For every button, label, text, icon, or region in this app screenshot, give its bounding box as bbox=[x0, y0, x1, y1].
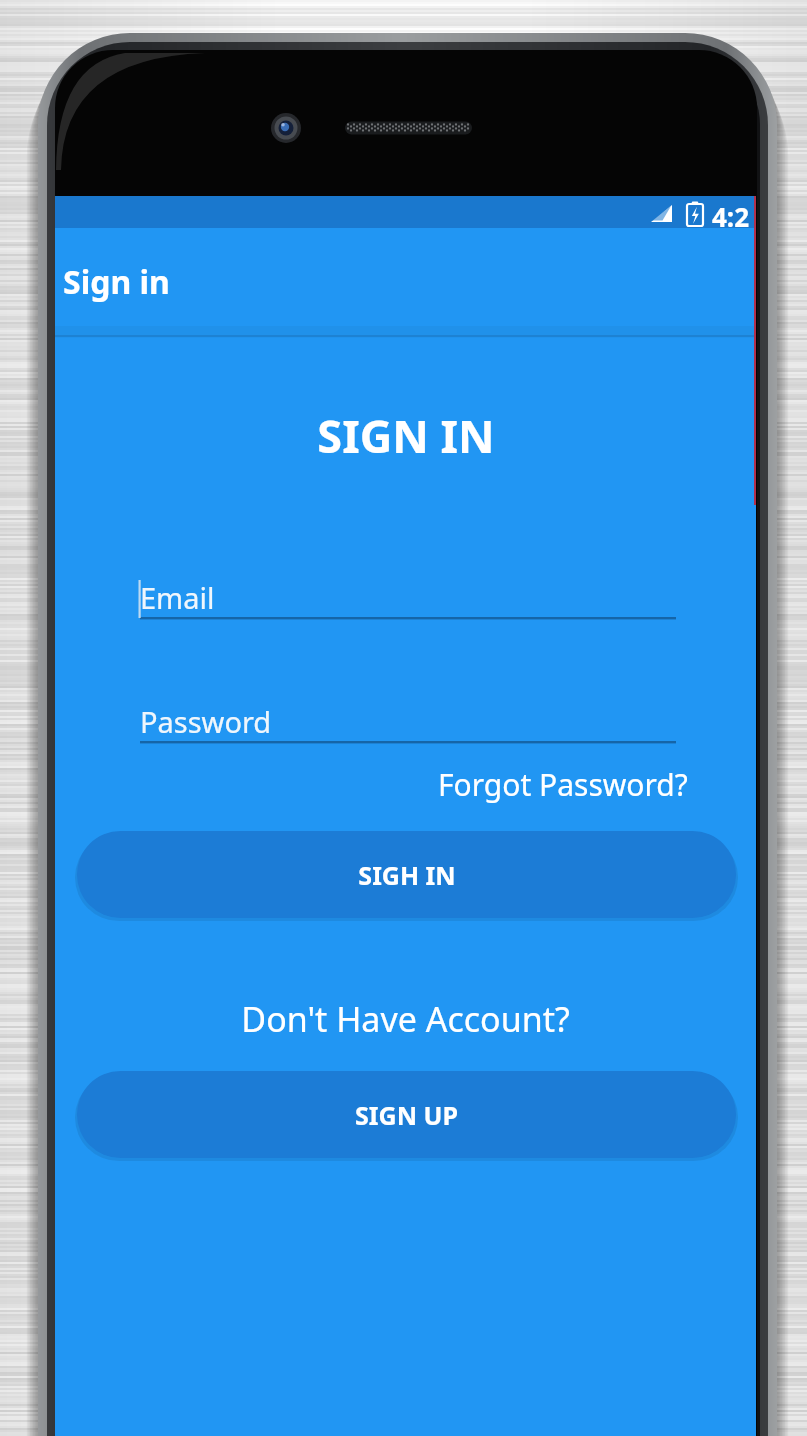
button[interactable]: Forgot Password? bbox=[404, 760, 688, 808]
staticText: Don't Have Account? bbox=[241, 996, 570, 1042]
staticText: Email bbox=[140, 578, 215, 617]
button[interactable]: SIGN UP bbox=[77, 1071, 736, 1158]
staticText: SIGN UP bbox=[355, 1098, 458, 1132]
button[interactable]: Password bbox=[140, 694, 676, 744]
button[interactable]: SIGH IN bbox=[77, 831, 736, 918]
staticText: Sign in bbox=[63, 260, 170, 304]
button[interactable]: Sign in bbox=[55, 228, 756, 335]
staticText: Forgot Password? bbox=[438, 764, 688, 805]
staticText: SIGH IN bbox=[358, 858, 456, 892]
staticText: SIGN IN bbox=[317, 405, 495, 466]
staticText: Password bbox=[140, 702, 272, 741]
button[interactable]: Email bbox=[140, 570, 676, 620]
staticText: 4:2 bbox=[712, 199, 750, 234]
